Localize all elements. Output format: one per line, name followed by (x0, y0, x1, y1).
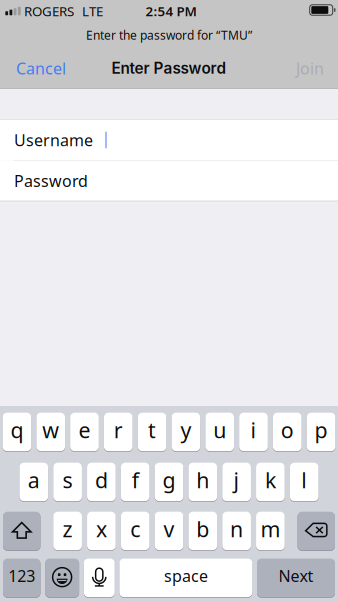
staticText: Enter the password for “TMU” (86, 27, 252, 43)
button[interactable]: Cancel (0, 48, 76, 88)
staticText: k (265, 466, 276, 494)
button[interactable]: o (273, 412, 302, 452)
staticText: m (260, 515, 280, 543)
staticText: Join (296, 58, 324, 79)
staticText: Cancel (16, 58, 66, 79)
staticText: q (10, 416, 23, 444)
staticText: Enter Password (111, 59, 226, 77)
staticText: g (162, 466, 175, 494)
staticText: e (78, 416, 90, 444)
button[interactable]: 123 (3, 558, 40, 598)
staticText: p (315, 416, 328, 444)
button[interactable]: Join (286, 48, 338, 88)
staticText: o (281, 416, 294, 444)
button[interactable]: n (222, 511, 251, 551)
button[interactable]: s (53, 462, 82, 502)
button[interactable]: f (121, 462, 150, 502)
button[interactable]: m (256, 511, 285, 551)
button[interactable]: i (239, 412, 268, 452)
staticText: b (196, 515, 209, 543)
staticText: Password (14, 170, 88, 191)
button[interactable]: a (19, 462, 48, 502)
staticText: h (196, 466, 209, 494)
button[interactable]: Password (0, 161, 338, 201)
button[interactable]: Delete (297, 511, 335, 551)
button[interactable]: Username (0, 120, 338, 160)
staticText: 123 (8, 565, 35, 586)
staticText: w (42, 416, 59, 444)
staticText: u (213, 416, 226, 444)
button[interactable]: j (222, 462, 251, 502)
button[interactable]: u (205, 412, 234, 452)
staticText: c (130, 515, 140, 543)
button[interactable]: l (290, 462, 319, 502)
button[interactable]: Dictation (84, 558, 115, 598)
staticText: z (63, 515, 73, 543)
button[interactable]: r (104, 412, 133, 452)
button[interactable]: Shift (3, 511, 40, 551)
staticText: s (63, 466, 73, 494)
staticText: ROGERS (24, 2, 74, 20)
button[interactable]: k (256, 462, 285, 502)
button[interactable]: q (3, 412, 31, 452)
button[interactable]: b (188, 511, 217, 551)
button[interactable]: c (121, 511, 149, 551)
button[interactable]: p (307, 412, 335, 452)
staticText: i (250, 416, 256, 444)
staticText: a (28, 466, 40, 494)
button[interactable]: v (155, 511, 183, 551)
staticText: y (180, 416, 191, 444)
button[interactable]: space (119, 558, 252, 598)
button[interactable]: Emoji (45, 558, 79, 598)
button[interactable]: t (138, 412, 166, 452)
staticText: j (234, 466, 240, 494)
button[interactable]: g (155, 462, 183, 502)
button[interactable]: h (188, 462, 217, 502)
button[interactable]: d (87, 462, 116, 502)
staticText: x (96, 515, 107, 543)
button[interactable]: e (70, 412, 99, 452)
staticText: v (163, 515, 174, 543)
staticText: t (148, 416, 156, 444)
button[interactable]: z (53, 511, 82, 551)
button[interactable]: w (36, 412, 65, 452)
staticText: d (95, 466, 108, 494)
staticText: f (132, 466, 139, 494)
staticText: space (164, 565, 208, 586)
staticText: Next (278, 565, 313, 586)
staticText: Username (14, 129, 93, 151)
staticText: 2:54 PM (145, 2, 196, 20)
button[interactable]: x (87, 511, 116, 551)
staticText: r (114, 416, 123, 444)
staticText: l (301, 466, 307, 494)
button[interactable]: Next (257, 558, 335, 598)
button[interactable]: y (172, 412, 200, 452)
staticText: LTE (82, 2, 103, 20)
staticText: n (230, 515, 243, 543)
